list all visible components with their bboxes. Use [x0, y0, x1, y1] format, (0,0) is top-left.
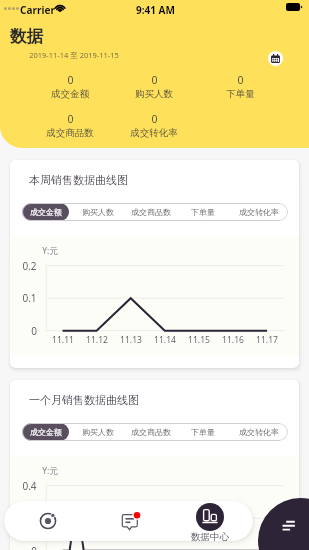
staticText: 成交金额: [30, 427, 62, 437]
staticText: 购买人数: [82, 427, 114, 437]
staticText: 成交商品数: [46, 127, 94, 139]
button[interactable]: 成交转化率: [230, 203, 288, 221]
button[interactable]: 成交转化率: [230, 423, 288, 441]
staticText: 成交商品数: [131, 207, 171, 217]
button[interactable]: 下单量: [176, 423, 230, 441]
button[interactable]: Menu: [258, 498, 309, 550]
staticText: 0: [31, 544, 37, 550]
button[interactable]: 成交商品数: [126, 203, 176, 221]
staticText: 成交金额: [51, 88, 89, 100]
staticText: 11.14: [154, 334, 176, 346]
staticText: 下单量: [191, 207, 215, 217]
button[interactable]: 成交金额: [22, 423, 69, 441]
staticText: 购买人数: [135, 88, 173, 100]
button[interactable]: 购买人数: [69, 423, 126, 441]
button[interactable]: Pick date range: [268, 51, 283, 66]
staticText: Y:元: [42, 465, 58, 477]
staticText: 2019-11-14 至 2019-11-15: [29, 50, 119, 60]
staticText: 11.13: [120, 334, 142, 346]
button[interactable]: 数据中心: [186, 500, 234, 545]
button[interactable]: Home: [33, 506, 63, 536]
staticText: 一个月销售数据曲线图: [29, 393, 139, 407]
staticText: 0: [67, 73, 74, 87]
staticText: 0: [237, 73, 244, 87]
staticText: 0.4: [22, 479, 37, 493]
button[interactable]: Messages: [115, 510, 143, 532]
staticText: 0: [151, 73, 158, 87]
staticText: 0.1: [22, 291, 37, 305]
staticText: 数据: [10, 26, 43, 47]
button[interactable]: 成交金额: [22, 203, 69, 221]
staticText: 0: [151, 112, 158, 126]
staticText: 下单量: [226, 88, 255, 100]
staticText: 11.11: [52, 334, 74, 346]
staticText: Y:元: [42, 245, 58, 257]
button[interactable]: 购买人数: [69, 203, 126, 221]
staticText: Carrier: [20, 3, 55, 17]
staticText: 9:41 AM: [136, 3, 175, 17]
staticText: 成交金额: [30, 207, 62, 217]
staticText: 0: [31, 324, 37, 338]
staticText: 数据中心: [191, 531, 229, 543]
staticText: 成交转化率: [239, 427, 279, 437]
staticText: 11.15: [188, 334, 210, 346]
staticText: 购买人数: [82, 207, 114, 217]
staticText: 0.2: [22, 259, 37, 273]
staticText: 本周销售数据曲线图: [29, 173, 128, 187]
staticText: 11.16: [222, 334, 244, 346]
staticText: 成交转化率: [239, 207, 279, 217]
staticText: 11.12: [86, 334, 108, 346]
staticText: 0: [67, 112, 74, 126]
button[interactable]: 下单量: [176, 203, 230, 221]
staticText: 成交商品数: [131, 427, 171, 437]
staticText: 成交转化率: [130, 127, 178, 139]
button[interactable]: 成交商品数: [126, 423, 176, 441]
staticText: 下单量: [191, 427, 215, 437]
staticText: 11.17: [256, 334, 278, 346]
